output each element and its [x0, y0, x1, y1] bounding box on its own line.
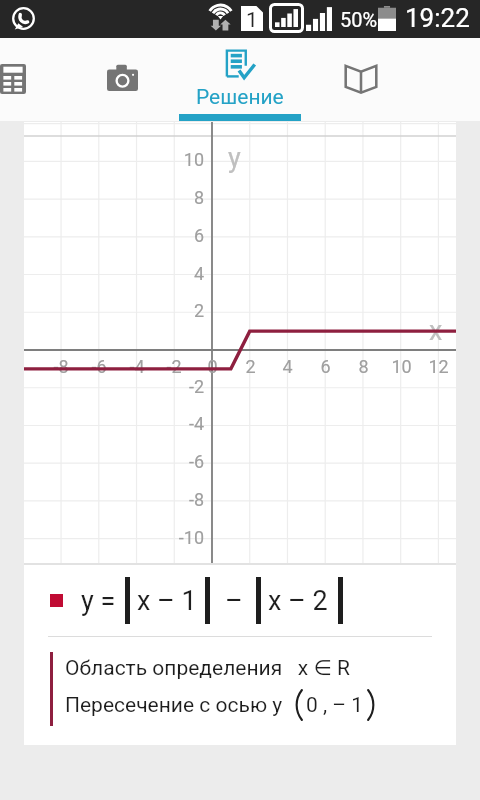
staticText: x [429, 315, 443, 347]
button[interactable]: Камера [61, 38, 183, 121]
button[interactable]: Калькулятор [0, 38, 65, 121]
staticText: -2 [188, 376, 204, 397]
staticText: -8 [188, 489, 204, 510]
staticText: y [228, 142, 241, 174]
staticText: -6 [188, 451, 204, 472]
staticText: 2 [245, 356, 256, 377]
staticText: 8 [193, 187, 204, 208]
staticText: 10 [391, 356, 412, 377]
staticText: 50% [340, 8, 378, 31]
staticText: 1 [246, 8, 258, 33]
staticText: -6 [91, 356, 107, 377]
staticText: -4 [188, 413, 204, 434]
staticText: Пересечение с осью y [65, 693, 283, 718]
staticText: 19:22 [405, 3, 470, 33]
staticText: x – 1 [137, 585, 197, 617]
staticText: y = [81, 585, 116, 617]
staticText: -10 [178, 527, 204, 548]
staticText: 12 [428, 356, 449, 377]
staticText: -2 [166, 356, 182, 377]
staticText: 10 [183, 149, 204, 170]
staticText: 4 [193, 263, 204, 284]
staticText: 0 , – 1 [306, 693, 364, 718]
button[interactable]: Решение [179, 38, 301, 121]
staticText: 8 [358, 356, 369, 377]
staticText: x – 2 [268, 585, 328, 617]
staticText: 6 [320, 356, 331, 377]
staticText: Область определения x ∈ R [65, 656, 350, 681]
staticText: 2 [193, 300, 204, 321]
staticText: – [225, 585, 243, 617]
button[interactable]: Справочник [300, 38, 422, 121]
staticText: 4 [282, 356, 293, 377]
staticText: 0 [207, 356, 218, 377]
staticText: -8 [53, 356, 69, 377]
staticText: -4 [129, 356, 145, 377]
staticText: 6 [193, 225, 204, 246]
staticText: Решение [196, 85, 284, 110]
